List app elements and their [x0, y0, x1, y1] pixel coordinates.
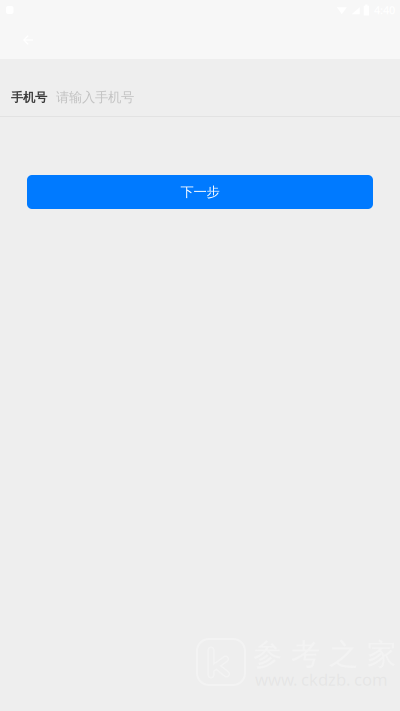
button[interactable]: 下一步: [27, 175, 373, 209]
staticText: 下一步: [180, 184, 219, 200]
staticText: 请输入手机号: [56, 89, 134, 106]
staticText: 手机号: [11, 90, 47, 105]
